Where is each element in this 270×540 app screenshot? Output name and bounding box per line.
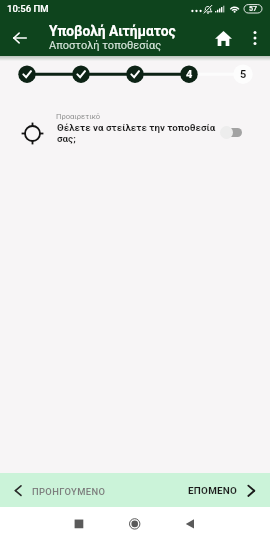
staticText: 57 <box>249 5 257 13</box>
button[interactable]: Back <box>168 507 212 540</box>
button[interactable]: Home <box>113 507 157 540</box>
staticText: Προαιρετικό <box>56 112 101 121</box>
button[interactable]: 4 <box>180 65 198 83</box>
button[interactable]: Recent apps <box>57 507 101 540</box>
staticText: 4 <box>186 68 193 81</box>
button[interactable]: Προαιρετικό <box>0 96 270 156</box>
staticText: ΠΡΟΗΓΟΥΜΕΝΟ <box>32 486 106 497</box>
button[interactable]: More options <box>240 23 269 52</box>
staticText: Υποβολή Αιτήματος <box>49 23 176 39</box>
button[interactable]: Back <box>2 20 38 56</box>
staticText: 5 <box>240 68 247 81</box>
button[interactable]: ΠΡΟΗΓΟΥΜΕΝΟ <box>6 475 112 505</box>
staticText: 10:56 ΠΜ <box>7 3 49 14</box>
staticText: Αποστολή τοποθεσίας <box>49 39 162 52</box>
button[interactable]: ΕΠΟΜΕΝΟ <box>180 475 264 505</box>
staticText: ΕΠΟΜΕΝΟ <box>188 485 238 497</box>
button[interactable]: Home <box>205 20 242 57</box>
button[interactable]: 5 <box>234 65 252 83</box>
button[interactable]: Toggle send location <box>214 120 250 144</box>
staticText: Θέλετε να στείλετε την τοποθεσία σας; <box>57 122 229 144</box>
